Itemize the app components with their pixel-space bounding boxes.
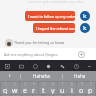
button[interactable]: Keyboard tool 0 (4, 63, 10, 69)
button[interactable]: I (0, 71, 20, 81)
staticText: I want to get a refund for my order (28, 0, 84, 4)
staticText: k (83, 12, 87, 20)
button[interactable]: I want to follow up my order, (25, 11, 75, 21)
staticText: q (3, 86, 8, 94)
staticText: Hahaha (33, 73, 50, 79)
button[interactable]: Contact avatar (5, 39, 13, 47)
staticText: 4 (33, 82, 35, 86)
button[interactable]: Haha (63, 71, 96, 81)
staticText: p (88, 86, 93, 94)
button[interactable]: Keyboard tool 5 (73, 63, 79, 69)
staticText: 6 (52, 82, 54, 86)
staticText: I (9, 73, 11, 79)
button[interactable]: 0 (86, 82, 95, 94)
button[interactable]: 8 (67, 82, 76, 94)
staticText: 1 (5, 82, 7, 86)
staticText: o (79, 86, 84, 94)
staticText: Ask me anything about Qingao (4, 52, 58, 57)
staticText: Haha (74, 73, 86, 79)
staticText: 5 (43, 82, 45, 86)
staticText: 9 (81, 82, 83, 86)
button[interactable]: 5 (39, 82, 48, 94)
staticText: t (42, 86, 45, 94)
staticText: k (83, 24, 87, 32)
button[interactable]: Your avatar (80, 11, 90, 21)
staticText: 8 (71, 82, 73, 86)
button[interactable]: 9 (77, 82, 86, 94)
staticText: 7 (62, 82, 64, 86)
button[interactable]: 7 (58, 82, 67, 94)
button[interactable]: 1 (1, 82, 10, 94)
button[interactable]: 3 (20, 82, 29, 94)
button[interactable]: 2 (10, 82, 19, 94)
staticText: e (23, 86, 27, 94)
staticText: u (60, 86, 65, 94)
staticText: Thank you for letting us know (14, 40, 65, 45)
staticText: I hoped the refund soon (36, 26, 75, 31)
button[interactable]: Keyboard tool 6 (86, 63, 92, 69)
button[interactable]: Keyboard tool 1 (18, 63, 24, 69)
button[interactable]: 6 (48, 82, 57, 94)
staticText: i (71, 86, 73, 94)
button[interactable]: Keyboard tool 3 (45, 63, 51, 69)
button[interactable]: Hahaha (21, 71, 62, 81)
other: Add attachment (78, 51, 85, 58)
button[interactable]: Keyboard tool 2 (32, 63, 38, 69)
staticText: 3 (24, 82, 26, 86)
staticText: r (32, 86, 35, 94)
button[interactable]: I hoped the refund soon (33, 23, 75, 33)
button[interactable]: Keyboard tool 4 (59, 63, 65, 69)
staticText: y (51, 86, 55, 94)
button[interactable]: Your avatar (80, 23, 90, 33)
staticText: w (12, 86, 18, 94)
staticText: 0 (90, 82, 92, 86)
button[interactable]: 4 (29, 82, 38, 94)
staticText: 2 (14, 82, 16, 86)
staticText: I want to follow up my order, (28, 14, 75, 19)
